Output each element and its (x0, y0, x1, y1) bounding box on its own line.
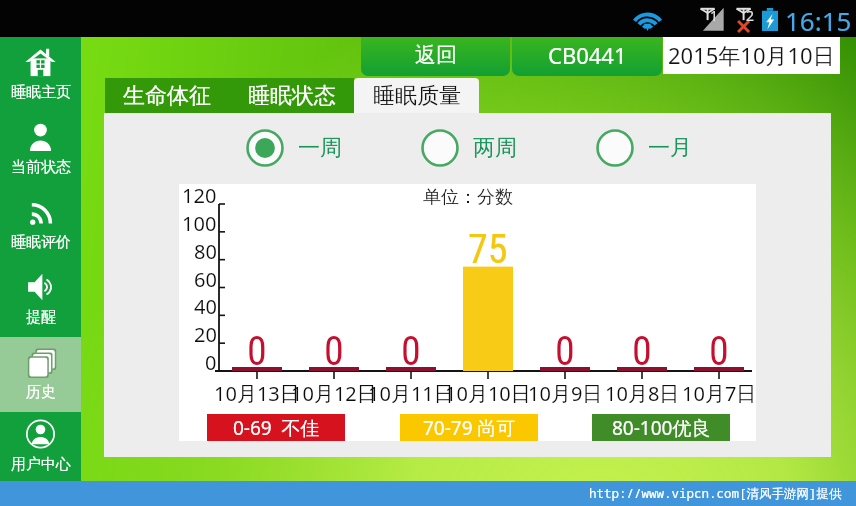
staticText: 睡眠质量 (373, 82, 461, 110)
staticText: 80 (194, 238, 217, 264)
staticText: 20 (194, 321, 217, 347)
staticText: http://www.vipcn.com[清风手游网]提供 (589, 485, 842, 502)
staticText: 10月11日 (368, 380, 454, 404)
button[interactable]: 一月 (596, 129, 692, 167)
button[interactable]: 睡眠质量 (354, 78, 479, 113)
staticText: 0 (205, 349, 217, 375)
button[interactable]: 70-79 尚可 (400, 414, 538, 441)
staticText: 一周 (298, 134, 342, 162)
staticText: 40 (194, 293, 217, 319)
button[interactable]: 两周 (421, 129, 517, 167)
button[interactable]: 睡眠主页 (0, 37, 81, 112)
staticText: 2015年10月10日 (668, 40, 835, 70)
staticText: 60 (194, 266, 217, 292)
staticText: 120 (182, 182, 217, 208)
staticText: 100 (182, 210, 217, 236)
staticText: 睡眠主页 (11, 83, 71, 102)
staticText: 生命体征 (123, 82, 211, 110)
button[interactable]: 返回 (361, 34, 510, 76)
staticText: CB0441 (548, 40, 627, 70)
staticText: 当前状态 (11, 158, 71, 177)
staticText: 0-69 不佳 (233, 415, 320, 441)
button[interactable]: 一周 (246, 129, 342, 167)
staticText: 返回 (415, 42, 457, 68)
staticText: 提醒 (26, 308, 56, 327)
staticText: 0 (632, 328, 652, 368)
staticText: 70-79 尚可 (423, 415, 516, 441)
staticText: 睡眠评价 (11, 233, 71, 252)
staticText: 一月 (648, 134, 692, 162)
button[interactable]: 历史 (0, 337, 81, 412)
staticText: 10月7日 (682, 380, 757, 404)
button[interactable]: 生命体征 (105, 78, 229, 113)
button[interactable]: 0-69 不佳 (207, 414, 345, 441)
staticText: 睡眠状态 (248, 82, 336, 110)
staticText: 0 (401, 328, 421, 368)
button[interactable]: CB0441 (512, 34, 662, 76)
staticText: 75 (468, 226, 508, 266)
button[interactable]: 提醒 (0, 262, 81, 337)
staticText: 两周 (473, 134, 517, 162)
staticText: 10月8日 (605, 380, 680, 404)
staticText: 0 (555, 328, 575, 368)
staticText: 1 (710, 6, 719, 25)
staticText: 10月12日 (291, 380, 377, 404)
button[interactable]: 当前状态 (0, 112, 81, 187)
button[interactable]: 睡眠评价 (0, 187, 81, 262)
staticText: 0 (324, 328, 344, 368)
staticText: 80-100优良 (612, 415, 711, 441)
staticText: 10月13日 (214, 380, 300, 404)
button[interactable]: 用户中心 (0, 412, 81, 481)
button[interactable]: 睡眠状态 (229, 78, 354, 113)
staticText: 10月9日 (528, 380, 603, 404)
staticText: 16:15 (785, 3, 852, 34)
staticText: 用户中心 (11, 455, 71, 474)
staticText: 0 (247, 328, 267, 368)
staticText: 0 (709, 328, 729, 368)
button[interactable]: 80-100优良 (592, 414, 730, 441)
staticText: 单位：分数 (423, 186, 513, 209)
staticText: 2 (746, 6, 755, 25)
staticText: 10月10日 (445, 380, 531, 404)
staticText: 历史 (26, 383, 56, 402)
